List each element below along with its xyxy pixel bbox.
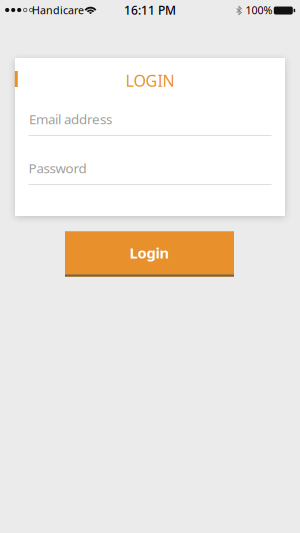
staticText: Email address: [29, 110, 112, 128]
button[interactable]: Email address: [28, 106, 271, 138]
staticText: Password: [28, 159, 86, 177]
button[interactable]: Password: [28, 155, 271, 187]
button[interactable]: Login: [65, 231, 234, 277]
staticText: Handicare: [32, 3, 84, 17]
staticText: LOGIN: [125, 70, 174, 91]
staticText: 100%: [245, 3, 272, 17]
staticText: Login: [129, 243, 169, 262]
staticText: 16:11 PM: [124, 2, 176, 18]
